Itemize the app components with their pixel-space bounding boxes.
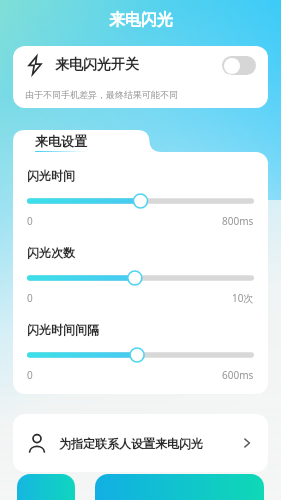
staticText: 闪光次数 [27,245,75,260]
button[interactable]: 取消 [17,474,75,500]
staticText: 闪光时间 [27,168,75,183]
staticText: 600ms [222,368,254,382]
staticText: 0 [27,368,33,382]
button[interactable]: 来电闪光开关 [13,46,268,108]
staticText: 10次 [232,291,254,305]
staticText: 闪光时间间隔 [27,322,99,337]
staticText: 0 [27,291,33,305]
staticText: 由于不同手机差异，最终结果可能不同 [25,89,178,100]
button[interactable]: 确定 [95,474,264,500]
button[interactable]: 来电闪光开关 [222,56,256,75]
staticText: 为指定联系人设置来电闪光 [59,436,203,451]
staticText: 来电闪光 [109,10,173,30]
staticText: 来电设置 [35,133,87,149]
staticText: 800ms [222,214,254,228]
staticText: 来电闪光开关 [55,56,139,74]
button[interactable] [27,193,254,209]
button[interactable]: 为指定联系人设置来电闪光 [13,414,268,472]
button[interactable] [27,347,254,363]
staticText: 0 [27,214,33,228]
button[interactable] [27,270,254,286]
